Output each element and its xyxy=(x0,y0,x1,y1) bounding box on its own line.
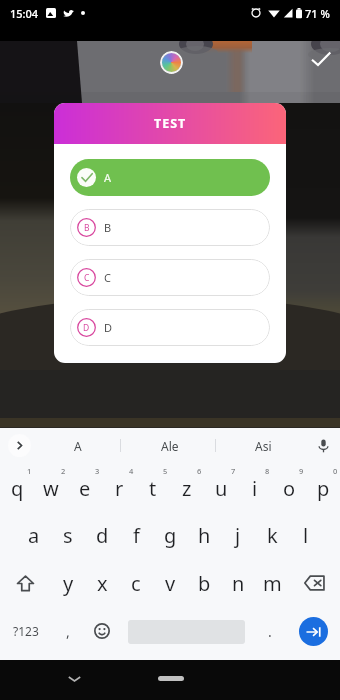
staticText: 8 xyxy=(265,466,270,476)
staticText: TEST xyxy=(154,115,187,132)
staticText: 1 xyxy=(27,466,32,476)
button[interactable]: d xyxy=(85,511,119,559)
button[interactable]: b xyxy=(187,559,221,607)
staticText: h xyxy=(198,522,211,549)
staticText: 6 xyxy=(197,466,202,476)
staticText: Asi xyxy=(255,438,272,454)
staticText: , xyxy=(66,622,70,641)
staticText: e xyxy=(79,475,91,502)
button[interactable]: Expand suggestions xyxy=(8,434,31,457)
button[interactable]: Asi xyxy=(222,428,304,463)
staticText: m xyxy=(263,570,282,597)
button[interactable]: Backspace xyxy=(289,559,340,607)
button[interactable]: Ale xyxy=(128,428,212,463)
button[interactable]: o xyxy=(272,463,306,511)
button[interactable]: u xyxy=(204,463,238,511)
button[interactable]: e xyxy=(68,463,102,511)
staticText: j xyxy=(235,522,241,549)
staticText: v xyxy=(165,570,176,597)
staticText: q xyxy=(11,475,24,502)
button[interactable]: r xyxy=(102,463,136,511)
staticText: 7 xyxy=(231,466,236,476)
button[interactable]: Confirm xyxy=(306,44,334,72)
staticText: 5 xyxy=(163,466,168,476)
button[interactable]: Colour filter xyxy=(160,51,183,74)
button[interactable]: A xyxy=(70,159,270,196)
staticText: x xyxy=(97,570,108,597)
staticText: a xyxy=(28,522,40,549)
button[interactable]: B xyxy=(70,209,270,246)
staticText: f xyxy=(133,522,140,549)
button[interactable]: . xyxy=(255,607,285,655)
staticText: o xyxy=(283,475,296,502)
button[interactable]: t xyxy=(136,463,170,511)
button[interactable]: n xyxy=(221,559,255,607)
button[interactable]: TEST xyxy=(54,103,286,363)
button[interactable]: , xyxy=(51,607,85,655)
button[interactable]: z xyxy=(170,463,204,511)
button[interactable]: Emoji xyxy=(85,607,119,655)
button[interactable]: x xyxy=(85,559,119,607)
staticText: C xyxy=(104,270,111,285)
button[interactable]: A xyxy=(36,428,120,463)
staticText: k xyxy=(267,522,278,549)
staticText: A xyxy=(104,170,112,185)
staticText: D xyxy=(104,320,113,335)
staticText: 71 % xyxy=(305,6,330,21)
staticText: s xyxy=(63,522,73,549)
staticText: 3 xyxy=(95,466,100,476)
staticText: 2 xyxy=(61,466,66,476)
staticText: 15:04 xyxy=(10,6,39,21)
staticText: l xyxy=(303,522,309,549)
button[interactable]: D xyxy=(70,309,270,346)
staticText: r xyxy=(115,475,124,502)
button[interactable]: C xyxy=(70,259,270,296)
staticText: 4 xyxy=(129,466,134,476)
button[interactable]: k xyxy=(255,511,289,559)
staticText: u xyxy=(215,475,228,502)
staticText: p xyxy=(317,475,330,502)
button[interactable]: h xyxy=(187,511,221,559)
button[interactable]: Shift xyxy=(0,559,51,607)
button[interactable]: y xyxy=(51,559,85,607)
button[interactable]: m xyxy=(255,559,289,607)
staticText: i xyxy=(252,475,258,502)
button[interactable]: f xyxy=(119,511,153,559)
staticText: 9 xyxy=(299,466,304,476)
staticText: g xyxy=(164,522,177,549)
button[interactable]: q xyxy=(0,463,34,511)
staticText: . xyxy=(268,622,272,641)
button[interactable]: Enter xyxy=(287,607,340,655)
staticText: t xyxy=(149,475,157,502)
button[interactable]: Back xyxy=(61,666,87,692)
button[interactable]: w xyxy=(34,463,68,511)
staticText: A xyxy=(74,438,82,454)
staticText: D xyxy=(83,322,90,334)
staticText: z xyxy=(182,475,192,502)
staticText: c xyxy=(131,570,141,597)
button[interactable]: l xyxy=(289,511,323,559)
staticText: 0 xyxy=(333,466,338,476)
staticText: B xyxy=(84,222,90,234)
button[interactable]: i xyxy=(238,463,272,511)
button[interactable]: s xyxy=(51,511,85,559)
button[interactable]: c xyxy=(119,559,153,607)
button[interactable]: p xyxy=(306,463,340,511)
staticText: d xyxy=(96,522,109,549)
button[interactable]: j xyxy=(221,511,255,559)
staticText: C xyxy=(84,272,90,284)
staticText: Ale xyxy=(161,438,179,454)
staticText: B xyxy=(104,220,112,235)
button[interactable]: g xyxy=(153,511,187,559)
button[interactable]: ?123 xyxy=(0,607,51,655)
button[interactable]: Voice input xyxy=(306,428,340,463)
staticText: b xyxy=(198,570,211,597)
staticText: n xyxy=(232,570,245,597)
staticText: w xyxy=(43,475,59,502)
button[interactable]: v xyxy=(153,559,187,607)
button[interactable]: Home xyxy=(158,676,184,681)
staticText: y xyxy=(63,570,74,597)
staticText: ?123 xyxy=(13,623,39,639)
button[interactable]: a xyxy=(17,511,51,559)
